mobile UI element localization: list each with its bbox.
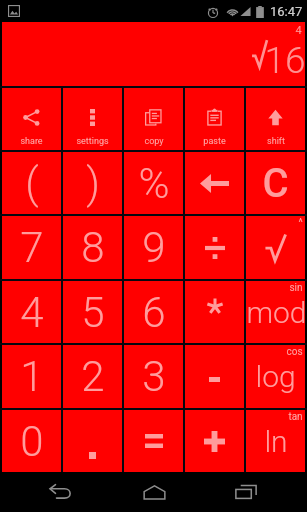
staticText: tan (288, 411, 303, 423)
button[interactable]: C (246, 152, 305, 214)
staticText: settings (76, 136, 109, 147)
button[interactable]: 2 (63, 345, 122, 408)
button[interactable]: % (124, 152, 183, 214)
staticText: ) (86, 159, 100, 208)
button[interactable]: 5 (63, 281, 122, 343)
button[interactable]: 8 (63, 216, 122, 279)
staticText: ( (25, 159, 39, 208)
button[interactable]: copy (124, 88, 183, 150)
button[interactable] (185, 281, 244, 343)
button[interactable]: 6 (124, 281, 183, 343)
staticText: sin (289, 282, 303, 294)
button[interactable]: 7 (2, 216, 61, 279)
staticText: paste (203, 136, 226, 147)
staticText: 4 (295, 24, 302, 37)
staticText: cos (286, 346, 303, 358)
button[interactable]: Back (29, 472, 93, 512)
button[interactable] (2, 22, 305, 86)
button[interactable]: log (246, 345, 305, 408)
staticText: 9 (142, 223, 166, 272)
button[interactable] (185, 152, 244, 214)
button[interactable]: ln (246, 410, 305, 472)
button[interactable]: Recent apps (214, 472, 278, 512)
staticText: mod (246, 295, 305, 330)
button[interactable] (185, 345, 244, 408)
staticText: 1 (20, 352, 44, 401)
staticText: shift (267, 136, 285, 147)
button[interactable]: 0 (2, 410, 61, 472)
staticText: % (138, 159, 170, 208)
button[interactable]: 4 (2, 281, 61, 343)
staticText: 3 (142, 352, 166, 401)
staticText: C (262, 160, 289, 207)
staticText: 16 (264, 39, 306, 82)
staticText: 0 (20, 417, 44, 466)
button[interactable]: shift (246, 88, 305, 150)
staticText: 2 (81, 352, 105, 401)
staticText: log (255, 359, 296, 394)
button[interactable]: settings (63, 88, 122, 150)
button[interactable]: share (2, 88, 61, 150)
button[interactable]: 9 (124, 216, 183, 279)
staticText: ln (264, 424, 288, 459)
staticText: 7 (20, 223, 44, 272)
button[interactable]: ) (63, 152, 122, 214)
button[interactable] (185, 216, 244, 279)
button[interactable] (185, 410, 244, 472)
staticText: 6 (142, 288, 166, 337)
staticText: copy (144, 136, 164, 147)
button[interactable] (63, 410, 122, 472)
button[interactable]: 3 (124, 345, 183, 408)
button[interactable]: ( (2, 152, 61, 214)
button[interactable]: mod (246, 281, 305, 343)
staticText: share (20, 136, 43, 147)
staticText: 4 (20, 288, 44, 337)
staticText: 16:47 (270, 4, 303, 19)
staticText: ^ (298, 217, 303, 229)
button[interactable]: 1 (2, 345, 61, 408)
button[interactable]: Home (122, 472, 186, 512)
staticText: 8 (81, 223, 105, 272)
staticText: 5 (81, 288, 105, 337)
button[interactable] (124, 410, 183, 472)
button[interactable]: ^ (246, 216, 305, 279)
button[interactable]: paste (185, 88, 244, 150)
